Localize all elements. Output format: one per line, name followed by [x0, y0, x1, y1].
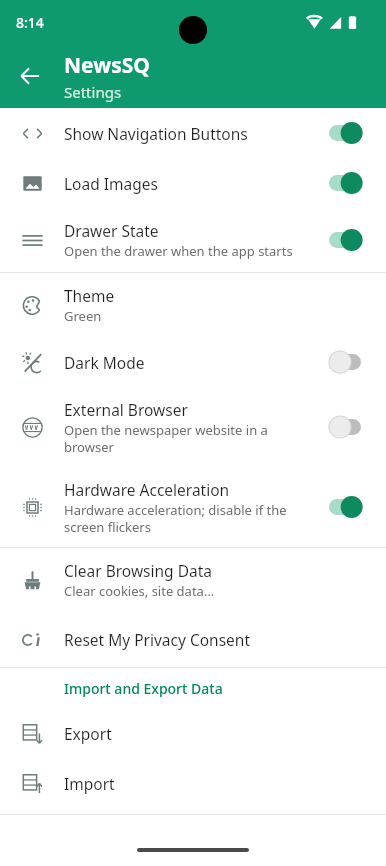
staticText: Import and Export Data: [64, 679, 223, 698]
button[interactable]: Hardware Acceleration: [0, 467, 386, 547]
staticText: Green: [64, 307, 102, 325]
staticText: Open the drawer when the app starts: [64, 242, 293, 260]
button[interactable]: Dark Mode: [326, 345, 372, 379]
button[interactable]: Back: [6, 52, 54, 100]
staticText: Import: [64, 773, 115, 794]
staticText: Dark Mode: [64, 352, 145, 373]
button[interactable]: Hardware Acceleration: [326, 490, 372, 524]
button[interactable]: Show Navigation Buttons: [0, 108, 386, 158]
staticText: Settings: [64, 82, 122, 102]
button[interactable]: Import: [0, 758, 386, 808]
staticText: External Browser: [64, 399, 188, 420]
staticText: Clear Browsing Data: [64, 560, 212, 581]
button[interactable]: Reset My Privacy Consent: [0, 612, 386, 667]
staticText: NewsSQ: [64, 51, 150, 80]
staticText: Reset My Privacy Consent: [64, 629, 250, 650]
staticText: Hardware acceleration; disable if the sc…: [64, 501, 287, 536]
button[interactable]: Dark Mode: [0, 337, 386, 387]
button[interactable]: Drawer State: [0, 208, 386, 272]
button[interactable]: Load Images: [326, 166, 372, 200]
button[interactable]: Theme: [0, 273, 386, 337]
button[interactable]: Show Navigation Buttons: [326, 116, 372, 150]
staticText: Drawer State: [64, 220, 159, 241]
button[interactable]: Load Images: [0, 158, 386, 208]
staticText: Hardware Acceleration: [64, 479, 230, 500]
button[interactable]: Export: [0, 708, 386, 758]
button[interactable]: Drawer State: [326, 223, 372, 257]
button[interactable]: External Browser: [326, 410, 372, 444]
staticText: Clear cookies, site data…: [64, 582, 215, 600]
staticText: Theme: [64, 285, 115, 306]
staticText: Open the newspaper website in a browser: [64, 421, 268, 456]
staticText: Show Navigation Buttons: [64, 123, 248, 144]
button[interactable]: Clear Browsing Data: [0, 548, 386, 612]
button[interactable]: External Browser: [0, 387, 386, 467]
staticText: Export: [64, 723, 112, 744]
staticText: 8:14: [16, 13, 44, 32]
staticText: Load Images: [64, 173, 158, 194]
